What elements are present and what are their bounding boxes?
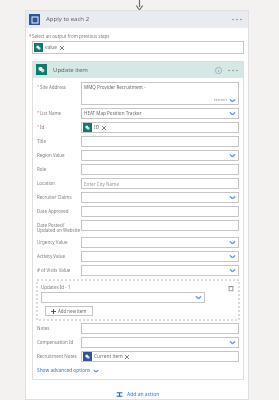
staticText: tenant	[214, 97, 227, 103]
button[interactable]: Show advanced options	[37, 367, 99, 374]
button[interactable]: Add an action	[113, 389, 162, 400]
button[interactable]	[81, 220, 239, 231]
button[interactable]	[81, 323, 239, 334]
staticText: Show advanced options	[37, 367, 91, 374]
staticText: *	[37, 110, 40, 116]
staticText: Add an action	[127, 391, 160, 398]
button[interactable]: value	[34, 43, 64, 52]
staticText: Date Posted/ Updated on Website	[37, 222, 81, 234]
button[interactable]: Info	[213, 65, 223, 75]
button[interactable]	[81, 164, 239, 175]
staticText: MMQ Provider Recruitment -	[84, 84, 146, 90]
staticText: Recruitment Notes	[37, 353, 77, 359]
staticText: value	[45, 44, 58, 51]
button[interactable]: MMQ Provider Recruitment -	[81, 82, 239, 105]
staticText: Id	[40, 124, 45, 130]
button[interactable]	[81, 337, 239, 348]
staticText: Compensation Id	[37, 339, 74, 345]
button[interactable]: Enter City Name	[81, 178, 239, 189]
staticText: List Name	[40, 110, 62, 116]
staticText: ID	[94, 124, 100, 131]
staticText: Activity Value	[37, 253, 65, 259]
staticText: *	[29, 33, 32, 39]
button[interactable]	[81, 136, 239, 147]
button[interactable]	[81, 251, 239, 262]
button[interactable]: More options	[230, 14, 244, 24]
button[interactable]: Update item	[32, 61, 244, 78]
staticText: Update item	[53, 66, 88, 74]
button[interactable]: Current item	[83, 352, 129, 361]
button[interactable]	[81, 192, 239, 203]
staticText: Select an output from previous steps	[32, 33, 110, 39]
staticText: Notes	[37, 325, 50, 331]
button[interactable]: Delete	[227, 284, 235, 292]
staticText: *	[37, 84, 40, 90]
staticText: Enter City Name	[84, 181, 119, 187]
staticText: Region Value	[37, 152, 65, 158]
staticText: Updates Id - 1	[41, 284, 71, 290]
button[interactable]: ID	[83, 123, 106, 132]
staticText: Add new item	[58, 308, 87, 314]
staticText: Current item	[94, 353, 123, 360]
staticText: Title	[37, 138, 46, 144]
staticText: Apply to each 2	[46, 15, 90, 23]
staticText: Urgency Value	[37, 239, 68, 245]
button[interactable]: More options	[226, 65, 240, 75]
button[interactable]: ID	[81, 122, 239, 133]
button[interactable]: Apply to each 2	[25, 10, 249, 28]
button[interactable]	[81, 150, 239, 161]
staticText: # of Visits Value	[37, 267, 71, 273]
staticText: HEAT Map Position Tracker	[84, 110, 142, 116]
button[interactable]: Add new item	[45, 306, 93, 316]
button[interactable]	[81, 265, 239, 276]
button[interactable]	[81, 206, 239, 217]
staticText: Date Approved	[37, 208, 69, 214]
button[interactable]: Current item	[81, 351, 239, 362]
staticText: Site Address	[40, 84, 66, 90]
button[interactable]	[41, 292, 205, 303]
button[interactable]: HEAT Map Position Tracker	[81, 108, 239, 119]
button[interactable]: value	[32, 41, 244, 54]
staticText: Location	[37, 180, 56, 186]
button[interactable]	[81, 237, 239, 248]
staticText: Recruiter Claims	[37, 194, 72, 200]
staticText: *	[37, 124, 40, 130]
staticText: Role	[37, 166, 47, 172]
